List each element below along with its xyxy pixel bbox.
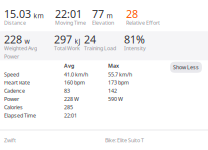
- staticText: 83: [64, 87, 70, 94]
- staticText: 228: [4, 32, 22, 46]
- staticText: Distance: [4, 19, 26, 26]
- staticText: 24: [84, 32, 96, 46]
- staticText: Heart Rate: [4, 79, 30, 86]
- staticText: Cadence: [4, 87, 25, 94]
- staticText: Total Work: [54, 45, 80, 52]
- staticText: 297: [54, 32, 72, 46]
- staticText: 55.7 km/h: [108, 71, 132, 78]
- staticText: kJ: [74, 37, 80, 46]
- staticText: Show Less: [173, 64, 199, 71]
- staticText: Calories: [4, 104, 23, 111]
- staticText: 22:01: [55, 7, 82, 21]
- staticText: Elevation: [92, 19, 114, 26]
- staticText: 77: [92, 7, 104, 21]
- staticText: 15.03: [4, 7, 31, 21]
- staticText: Weighted Avg: [4, 45, 37, 52]
- staticText: Max: [108, 62, 119, 69]
- staticText: Speed: [4, 71, 19, 78]
- button[interactable]: Show Less: [170, 62, 202, 73]
- staticText: Intensity: [124, 45, 146, 52]
- staticText: 228 W: [64, 95, 79, 102]
- staticText: Bike: Elite Suito T: [105, 137, 144, 144]
- staticText: 81%: [124, 32, 145, 46]
- staticText: Power: [4, 53, 19, 60]
- staticText: Power: [4, 95, 19, 102]
- staticText: w: [24, 37, 29, 46]
- staticText: 160 bpm: [64, 79, 85, 86]
- staticText: 22:01: [64, 112, 77, 119]
- staticText: Training Load: [84, 45, 116, 52]
- staticText: Elapsed Time: [4, 112, 36, 119]
- staticText: Avg: [64, 62, 74, 69]
- staticText: 173 bpm: [108, 79, 129, 86]
- staticText: Zwift: [4, 137, 16, 144]
- staticText: 142: [108, 87, 117, 94]
- staticText: 285: [64, 104, 73, 111]
- staticText: 590 W: [108, 95, 123, 102]
- staticText: 28: [126, 7, 138, 21]
- staticText: Relative Effort: [126, 19, 160, 26]
- staticText: m: [106, 11, 112, 20]
- staticText: 41.0 km/h: [64, 71, 88, 78]
- staticText: km: [33, 11, 43, 20]
- staticText: Moving Time: [55, 19, 86, 26]
